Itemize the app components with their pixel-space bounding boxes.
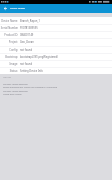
staticText: Status:	[0, 69, 18, 73]
staticText: Image:	[0, 62, 18, 66]
staticText: Product ID:	[0, 33, 18, 37]
staticText: Device Details	[10, 7, 26, 10]
staticText: Connect: device detected Whole Disk Syst…	[3, 90, 28, 95]
staticText: Config:	[0, 48, 18, 52]
staticText: Branch_Rayon_1	[20, 19, 40, 23]
button[interactable]: Image:	[0, 60, 112, 67]
staticText: bootstrap4181.png(Registered)	[20, 55, 58, 59]
staticText: not found	[20, 48, 33, 52]
staticText: Project:	[0, 40, 18, 44]
button[interactable]: Back	[0, 4, 10, 13]
staticText: Device Name:	[0, 19, 18, 23]
staticText: Connect: device detected Device administ…	[3, 83, 57, 88]
button[interactable]: Bootstrap:	[0, 53, 112, 60]
staticText: Geo_Ocean	[20, 40, 34, 44]
button[interactable]: Status:	[0, 67, 112, 74]
staticText: FV0781389595	[20, 26, 38, 30]
staticText: AUDIT LOG	[3, 76, 11, 78]
button[interactable]: Device Name:	[0, 17, 112, 24]
button[interactable]: Serial Number:	[0, 24, 112, 31]
staticText: not found	[20, 62, 33, 66]
staticText: Setting Device Info	[20, 69, 43, 73]
button[interactable]: Product ID:	[0, 31, 112, 38]
button[interactable]: Project:	[0, 38, 112, 45]
button[interactable]: Config:	[0, 46, 112, 53]
staticText: Bootstrap:	[0, 55, 18, 59]
staticText: Serial Number:	[0, 26, 18, 30]
staticText: 084001149	[20, 33, 34, 37]
